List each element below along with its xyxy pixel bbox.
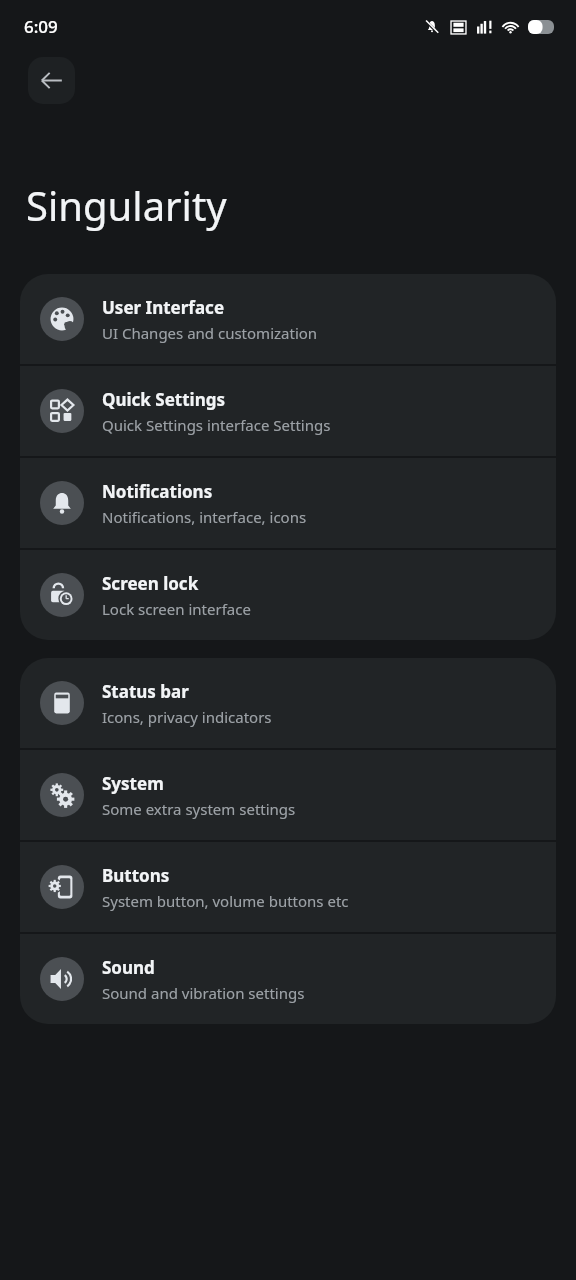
staticText: User Interface	[102, 296, 225, 319]
staticText: Quick Settings interface Settings	[102, 415, 331, 435]
button[interactable]: Screen lock	[20, 550, 556, 640]
staticText: Quick Settings	[102, 388, 225, 411]
staticText: Icons, privacy indicators	[102, 707, 272, 727]
staticText: Some extra system settings	[102, 799, 296, 819]
staticText: Buttons	[102, 864, 170, 887]
button[interactable]: Notifications	[20, 458, 556, 548]
button[interactable]: System	[20, 750, 556, 840]
staticText: Notifications	[102, 480, 213, 503]
button[interactable]: User Interface	[20, 274, 556, 364]
button[interactable]: Sound	[20, 934, 556, 1024]
button[interactable]: Back	[28, 57, 75, 104]
staticText: Sound	[102, 956, 155, 979]
button[interactable]: Buttons	[20, 842, 556, 932]
staticText: Sound and vibration settings	[102, 983, 305, 1003]
staticText: Singularity	[26, 178, 227, 232]
staticText: 6:09	[24, 15, 58, 38]
staticText: Screen lock	[102, 572, 199, 595]
staticText: System	[102, 772, 164, 795]
button[interactable]: Quick Settings	[20, 366, 556, 456]
staticText: System button, volume buttons etc	[102, 891, 349, 911]
staticText: Status bar	[102, 680, 189, 703]
button[interactable]: Status bar	[20, 658, 556, 748]
staticText: UI Changes and customization	[102, 323, 318, 343]
staticText: Lock screen interface	[102, 599, 251, 619]
staticText: Notifications, interface, icons	[102, 507, 307, 527]
